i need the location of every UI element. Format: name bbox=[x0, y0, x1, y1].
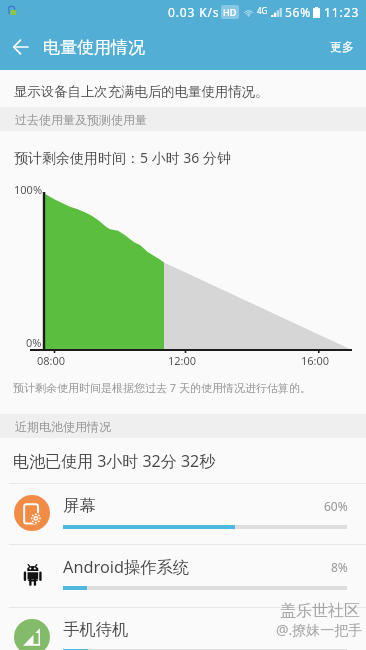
button[interactable]: 更多 bbox=[318, 28, 366, 67]
button[interactable]: Back bbox=[0, 27, 40, 67]
staticText: Android操作系统 bbox=[63, 556, 190, 578]
staticText: 屏幕 bbox=[63, 495, 96, 516]
button[interactable]: Android操作系统 bbox=[0, 544, 366, 607]
staticText: 11:23 bbox=[324, 4, 360, 20]
staticText: @.撩妹一把手 bbox=[276, 620, 363, 639]
staticText: 显示设备自上次充满电后的电量使用情况。 bbox=[14, 83, 269, 100]
staticText: 过去使用量及预测使用量 bbox=[15, 112, 147, 127]
staticText: 4G bbox=[257, 5, 268, 16]
button[interactable]: 屏幕 bbox=[0, 483, 366, 544]
staticText: 56% bbox=[285, 4, 311, 20]
staticText: 60% bbox=[324, 498, 348, 514]
staticText: 近期电池使用情况 bbox=[15, 419, 111, 434]
staticText: 预计剩余使用时间：5 小时 36 分钟 bbox=[14, 148, 231, 167]
staticText: 0.03 K/s bbox=[168, 4, 220, 20]
staticText: 更多 bbox=[330, 39, 354, 54]
staticText: 电池已使用 3小时 32分 32秒 bbox=[13, 450, 216, 472]
staticText: HD bbox=[223, 6, 237, 18]
staticText: 12:00 bbox=[168, 353, 197, 368]
staticText: 手机待机 bbox=[63, 619, 129, 640]
staticText: 100% bbox=[14, 182, 43, 197]
staticText: 盖乐世社区 bbox=[280, 601, 360, 621]
staticText: 预计剩余使用时间是根据您过去 7 天的使用情况进行估算的。 bbox=[13, 380, 312, 395]
staticText: 16:00 bbox=[301, 353, 330, 368]
staticText: 电量使用情况 bbox=[43, 37, 145, 58]
button[interactable]: 手机待机 bbox=[0, 607, 366, 650]
staticText: 8% bbox=[331, 559, 348, 575]
staticText: 08:00 bbox=[37, 353, 66, 368]
staticText: 0% bbox=[26, 335, 42, 350]
